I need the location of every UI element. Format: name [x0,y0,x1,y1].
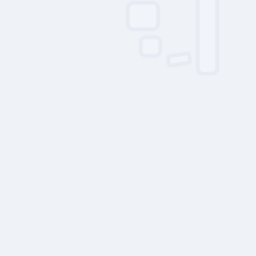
button[interactable]: Tile placeholder [138,34,163,58]
button[interactable]: Column placeholder [195,0,220,76]
button[interactable]: Card placeholder [125,0,161,32]
button[interactable]: Tag placeholder [165,52,192,67]
